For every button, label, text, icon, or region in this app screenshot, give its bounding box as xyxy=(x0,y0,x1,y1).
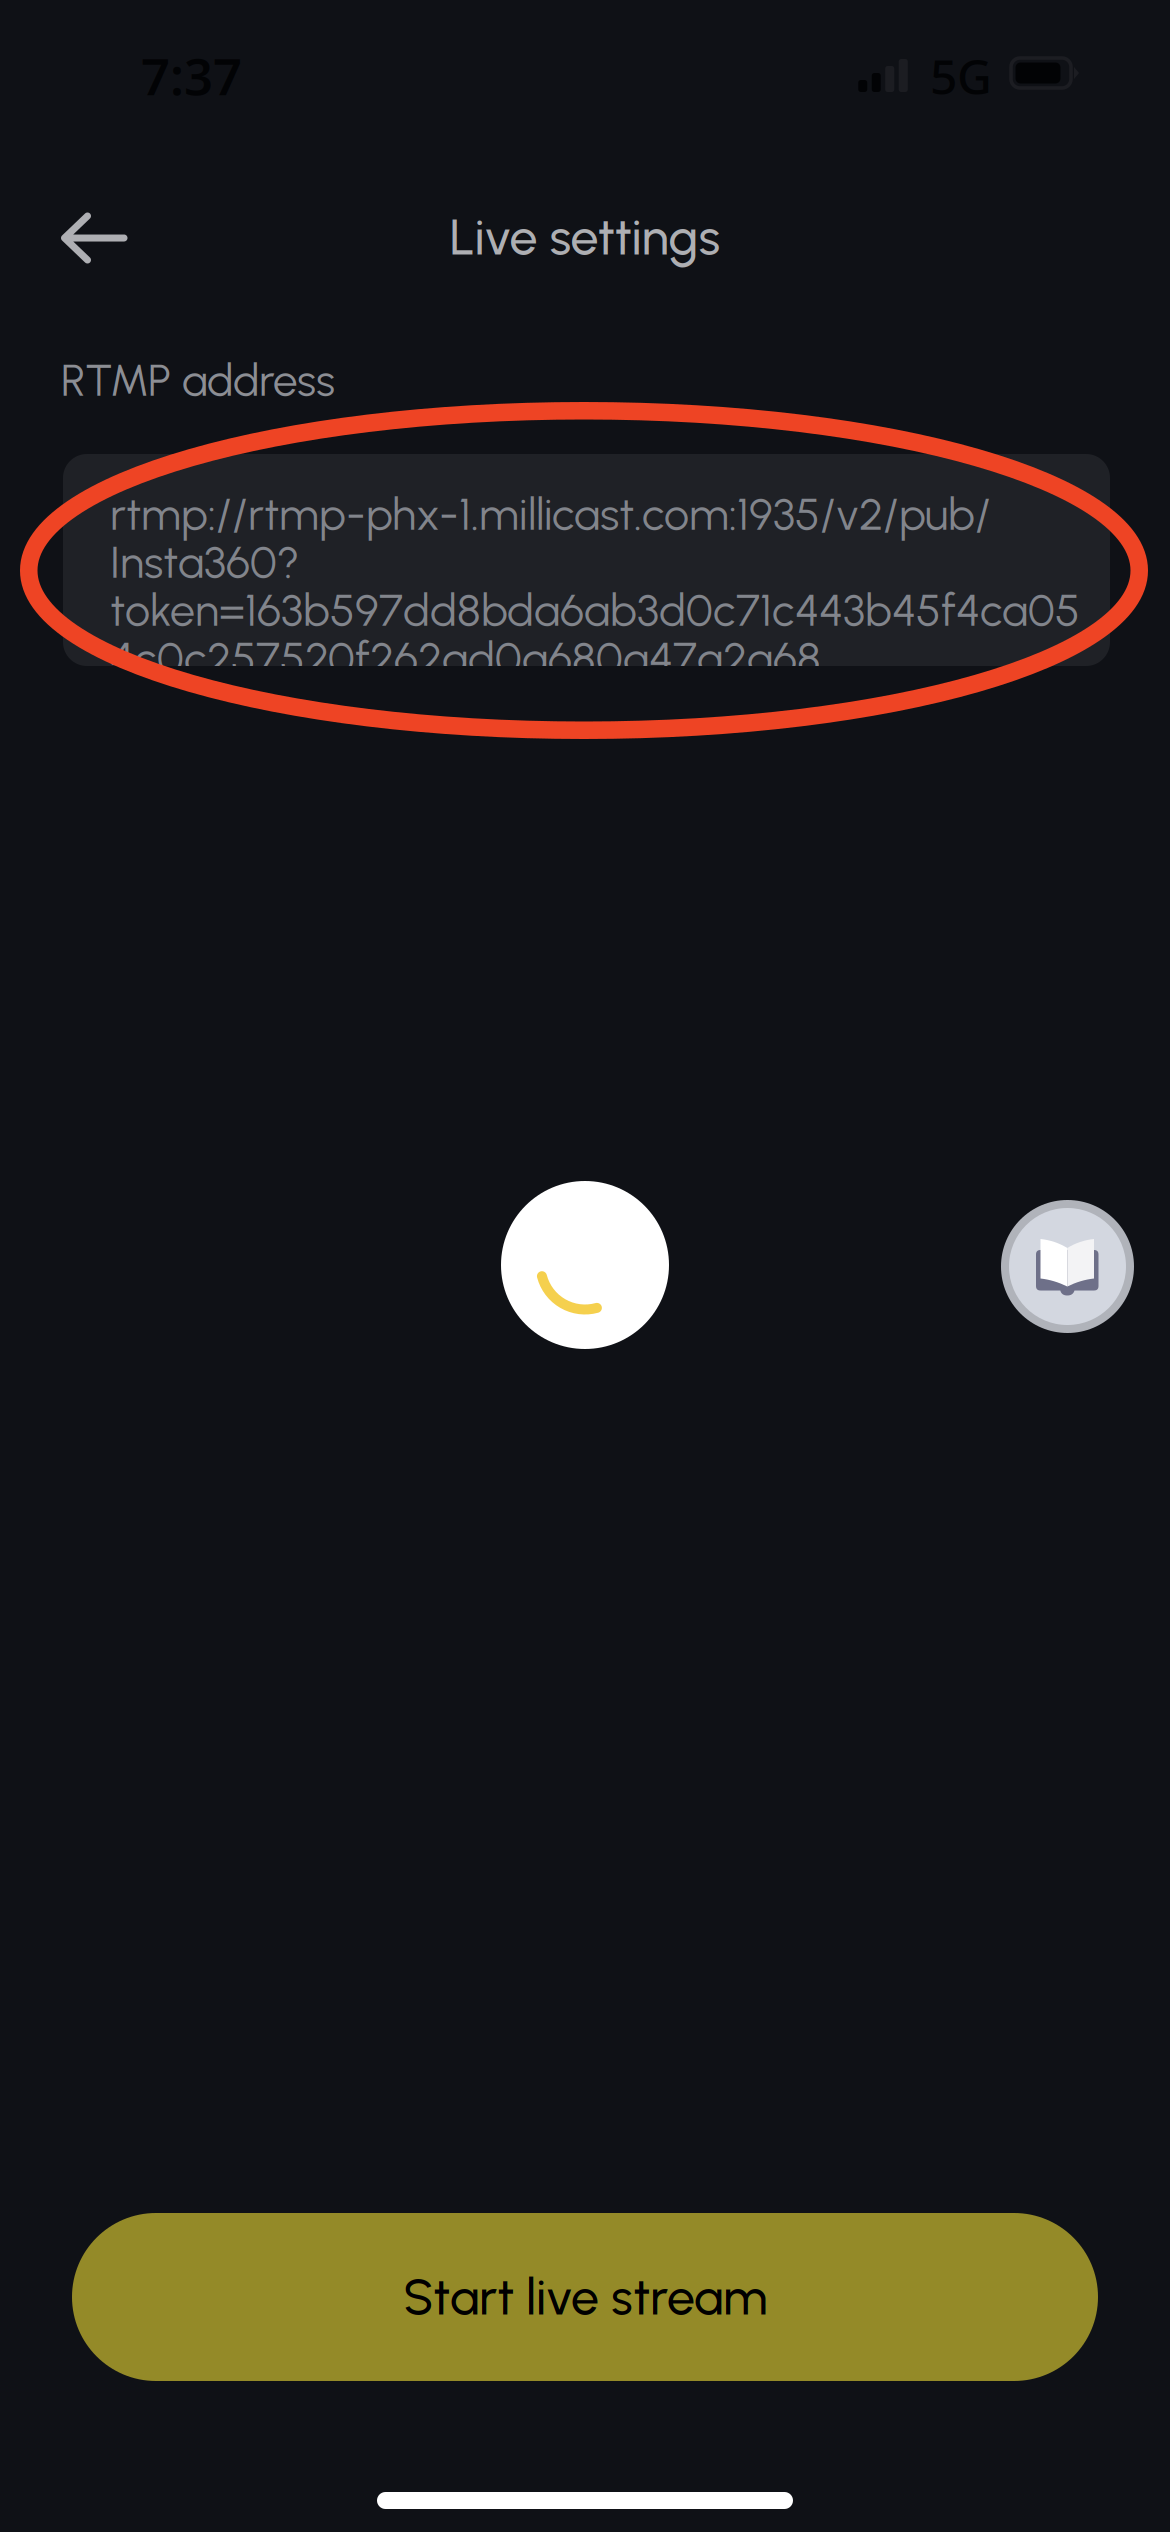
staticText: Insta360? xyxy=(110,535,299,589)
staticText: Live settings xyxy=(449,207,720,267)
staticText: token=163b597dd8bda6ab3d0c71c443b45f4ca0… xyxy=(110,583,1080,637)
staticText: 5G xyxy=(930,44,992,108)
button[interactable]: Start live stream xyxy=(72,2213,1098,2381)
staticText: 4c0c257520f262ad0a680a47a2a68 xyxy=(110,631,821,685)
button[interactable]: Back xyxy=(42,186,146,290)
staticText: rtmp://rtmp-phx-1.millicast.com:1935/v2/… xyxy=(110,487,991,541)
staticText: 7:37 xyxy=(141,42,242,109)
button[interactable]: User manual xyxy=(1001,1200,1134,1333)
button[interactable]: rtmp://rtmp-phx-1.millicast.com:1935/v2/… xyxy=(63,454,1110,666)
staticText: RTMP address xyxy=(61,354,335,407)
button[interactable]: Capture xyxy=(501,1181,669,1349)
staticText: Start live stream xyxy=(403,2267,767,2327)
